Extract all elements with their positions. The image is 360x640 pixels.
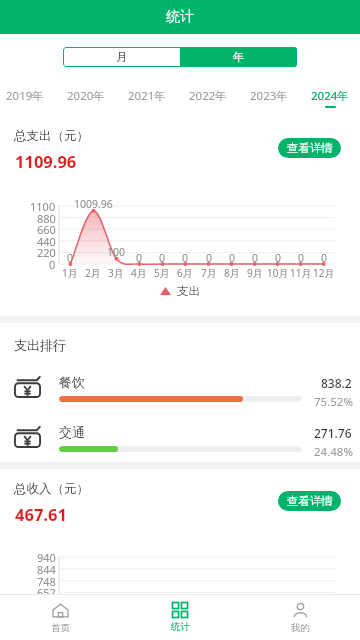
button[interactable]: 2021年 xyxy=(121,85,173,107)
staticText: 3月 xyxy=(108,266,124,280)
staticText: 0 xyxy=(49,257,56,272)
button[interactable]: 首页 xyxy=(0,595,120,640)
staticText: 7月 xyxy=(201,266,217,280)
staticText: 交通 xyxy=(59,424,85,440)
button[interactable]: 餐饮 xyxy=(0,374,360,406)
button[interactable]: 查看详情 xyxy=(278,138,341,158)
staticText: 总收入（元） xyxy=(14,481,89,497)
staticText: 首页 xyxy=(51,622,70,634)
staticText: 2023年 xyxy=(250,88,288,104)
staticText: 100 xyxy=(107,245,126,259)
button[interactable]: 我的 xyxy=(240,595,360,640)
button[interactable]: 查看详情 xyxy=(278,491,341,511)
staticText: 880 xyxy=(37,211,56,226)
staticText: 271.76 xyxy=(314,425,352,441)
other: 我的 xyxy=(292,602,309,619)
staticText: 10月 xyxy=(267,266,289,280)
staticText: 2020年 xyxy=(67,88,105,104)
staticText: 年 xyxy=(233,50,245,64)
staticText: 0 xyxy=(206,251,213,265)
staticText: 2月 xyxy=(85,266,101,280)
staticText: 2024年 xyxy=(311,88,349,104)
staticText: 0 xyxy=(159,251,166,265)
button[interactable]: 2020年 xyxy=(60,85,112,107)
staticText: 5月 xyxy=(154,266,170,280)
staticText: 4月 xyxy=(131,266,147,280)
other: 统计 xyxy=(172,602,188,618)
button[interactable]: 年 xyxy=(180,47,297,67)
staticText: 660 xyxy=(37,222,56,237)
button[interactable]: 统计 xyxy=(120,595,240,640)
staticText: 940 xyxy=(37,550,56,565)
staticText: 24.48% xyxy=(314,444,353,460)
staticText: 440 xyxy=(37,234,56,249)
other: 首页 xyxy=(52,602,69,619)
button[interactable]: 2022年 xyxy=(182,85,234,107)
staticText: 12月 xyxy=(313,266,335,280)
staticText: 8月 xyxy=(224,266,240,280)
staticText: 11月 xyxy=(290,266,312,280)
staticText: 844 xyxy=(37,562,56,577)
staticText: 查看详情 xyxy=(287,141,333,155)
staticText: 0 xyxy=(67,251,74,265)
button[interactable]: 2019年 xyxy=(0,85,51,107)
staticText: 1100 xyxy=(30,199,56,214)
staticText: 支出排行 xyxy=(14,337,66,353)
staticText: 0 xyxy=(182,251,189,265)
staticText: 2021年 xyxy=(128,88,166,104)
staticText: 220 xyxy=(37,245,56,260)
staticText: 0 xyxy=(275,251,282,265)
staticText: 2019年 xyxy=(6,88,44,104)
staticText: 餐饮 xyxy=(59,374,85,390)
staticText: 0 xyxy=(229,251,236,265)
staticText: 0 xyxy=(136,251,143,265)
staticText: 1009.96 xyxy=(74,197,113,211)
staticText: 我的 xyxy=(291,622,310,634)
staticText: 2022年 xyxy=(189,88,227,104)
staticText: 统计 xyxy=(171,621,190,633)
staticText: 统计 xyxy=(166,8,194,26)
button[interactable]: 月 xyxy=(63,47,180,67)
staticText: 6月 xyxy=(177,266,193,280)
button[interactable]: 交通 xyxy=(0,424,360,456)
staticText: 9月 xyxy=(247,266,263,280)
staticText: 838.2 xyxy=(321,375,352,391)
staticText: 总支出（元） xyxy=(14,128,89,144)
staticText: 0 xyxy=(298,251,305,265)
staticText: 0 xyxy=(321,251,328,265)
staticText: 1月 xyxy=(62,266,78,280)
staticText: 467.61 xyxy=(15,503,67,525)
staticText: 月 xyxy=(116,50,128,64)
staticText: 652 xyxy=(37,585,56,600)
staticText: 75.52% xyxy=(314,394,353,410)
staticText: 1109.96 xyxy=(15,150,77,172)
staticText: 支出 xyxy=(177,284,200,297)
button[interactable]: 2024年 xyxy=(304,85,356,107)
staticText: 查看详情 xyxy=(287,494,333,508)
staticText: 748 xyxy=(37,574,56,589)
staticText: 0 xyxy=(252,251,259,265)
button[interactable]: 2023年 xyxy=(243,85,295,107)
